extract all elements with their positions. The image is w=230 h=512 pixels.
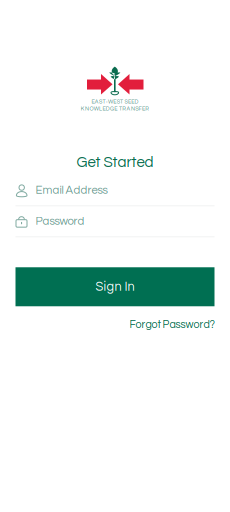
- staticText: Email Address: [35, 184, 107, 196]
- button[interactable]: Forgot Password?: [129, 319, 214, 330]
- button[interactable]: Sign In: [15, 267, 214, 306]
- staticText: KNOWLEDGE TRANSFER: [81, 106, 149, 112]
- staticText: Password: [35, 215, 84, 227]
- button[interactable]: Email Address: [15, 175, 214, 206]
- staticText: Forgot Password?: [129, 319, 214, 330]
- staticText: Get Started: [76, 155, 153, 170]
- staticText: EAST-WEST SEED: [91, 99, 139, 105]
- button[interactable]: Password: [15, 206, 214, 237]
- staticText: Sign In: [95, 280, 134, 293]
